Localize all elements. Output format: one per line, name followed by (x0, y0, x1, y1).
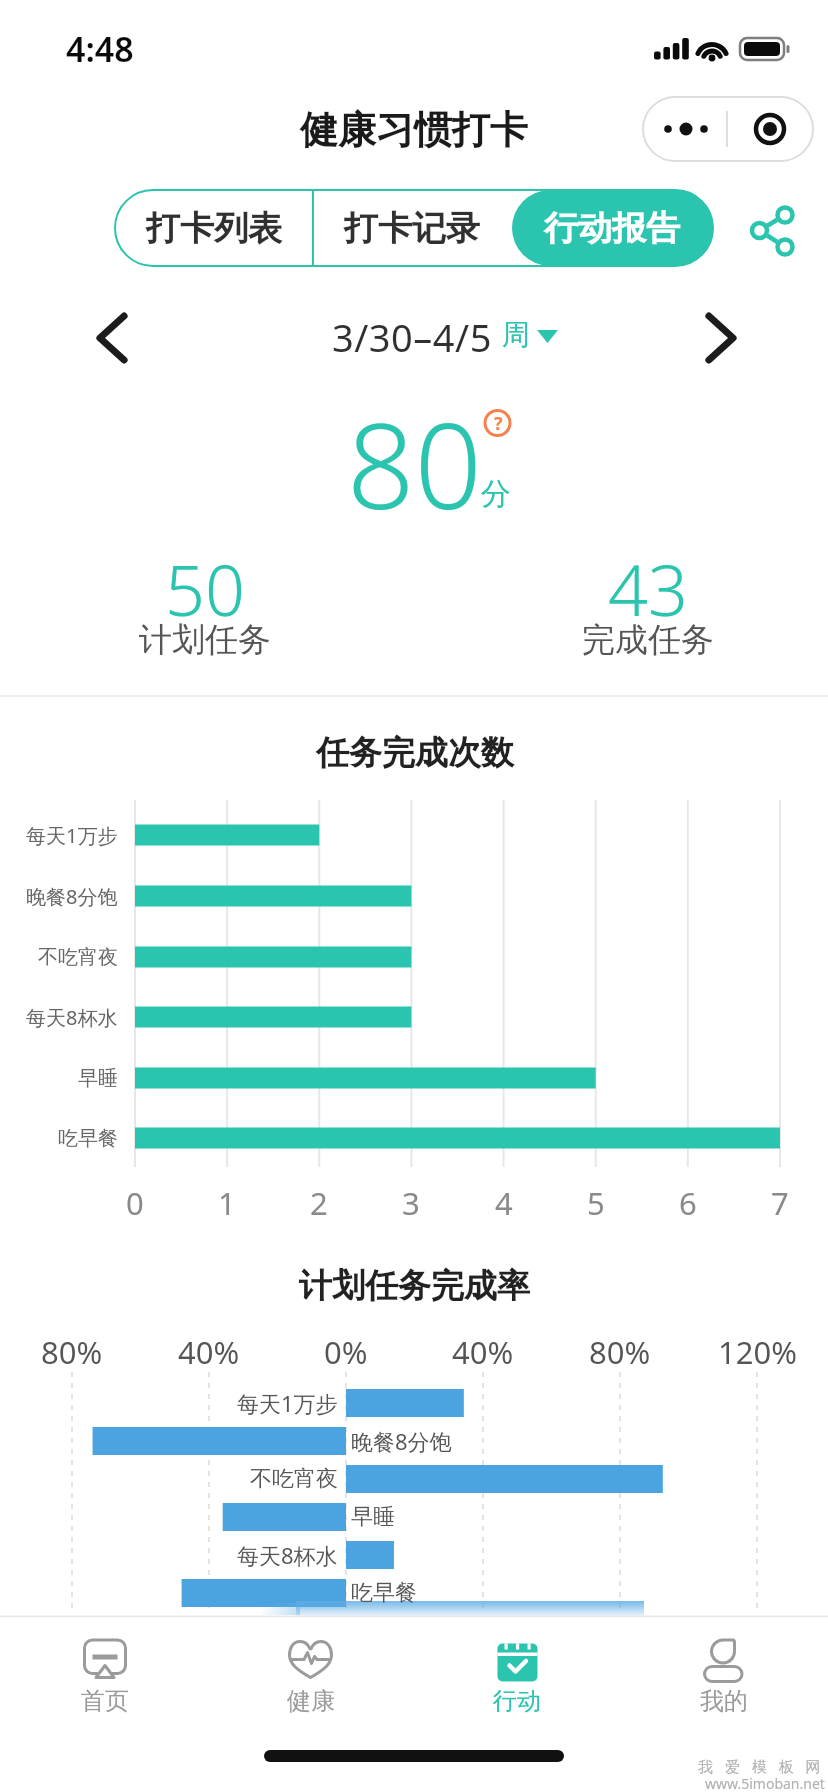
button[interactable] (643, 1626, 803, 1722)
button[interactable] (85, 310, 140, 366)
button[interactable] (512, 190, 713, 266)
staticText: 早睡 (351, 1503, 395, 1531)
staticText: 每天8杯水 (237, 1540, 338, 1570)
staticText: 计划任务完成率 (299, 1265, 530, 1307)
staticText: 0 (126, 1182, 144, 1224)
staticText: 我 爱 模 板 网 (698, 1756, 825, 1776)
staticText: 7 (771, 1182, 789, 1224)
button[interactable] (693, 310, 748, 366)
button[interactable] (437, 1626, 597, 1722)
staticText: 完成任务 (582, 619, 714, 661)
staticText: 晚餐8分饱 (351, 1426, 452, 1456)
staticText: 3 (402, 1182, 420, 1224)
staticText: 吃早餐 (351, 1579, 417, 1607)
staticText: 行动报告 (544, 207, 680, 250)
staticText: 分 (481, 475, 511, 513)
staticText: 5 (587, 1182, 605, 1224)
staticText: 不吃宵夜 (250, 1465, 338, 1493)
staticText: 1 (218, 1182, 236, 1224)
button[interactable] (230, 1626, 390, 1722)
staticText: 6 (679, 1182, 697, 1224)
staticText: 80 (347, 383, 482, 544)
button[interactable] (115, 190, 313, 266)
staticText: www.5imoban.net (705, 1774, 825, 1792)
button[interactable] (313, 190, 512, 266)
button[interactable] (25, 1626, 185, 1722)
button[interactable] (481, 407, 514, 440)
staticText: 50 (165, 541, 245, 636)
staticText: 计划任务 (139, 619, 271, 661)
staticText: 每天8杯水 (26, 1004, 118, 1031)
staticText: 40% (178, 1331, 240, 1373)
staticText: 120% (718, 1331, 797, 1373)
staticText: 每天1万步 (237, 1388, 338, 1418)
staticText: 吃早餐 (58, 1126, 118, 1151)
staticText: 周 (502, 317, 530, 352)
staticText: 3/30–4/5 (332, 311, 492, 363)
staticText: 80% (589, 1331, 651, 1373)
staticText: 晚餐8分饱 (26, 883, 118, 910)
staticText: ? (494, 411, 503, 436)
staticText: 早睡 (78, 1066, 118, 1091)
staticText: 80% (41, 1331, 103, 1373)
staticText: 40% (452, 1331, 514, 1373)
button[interactable] (738, 200, 800, 262)
staticText: 行动 (493, 1686, 541, 1716)
staticText: 打卡列表 (146, 207, 282, 250)
staticText: 健康 (287, 1686, 335, 1716)
staticText: 4 (495, 1182, 513, 1224)
staticText: 每天1万步 (26, 822, 118, 849)
button[interactable] (330, 310, 565, 366)
button[interactable] (728, 97, 813, 161)
staticText: 首页 (81, 1686, 129, 1716)
staticText: 任务完成次数 (316, 732, 514, 774)
staticText: 0% (324, 1331, 368, 1373)
staticText: 43 (608, 541, 688, 636)
staticText: 我的 (700, 1686, 748, 1716)
button[interactable] (643, 97, 728, 161)
staticText: 不吃宵夜 (38, 945, 118, 970)
staticText: 4:48 (66, 26, 134, 72)
staticText: 2 (310, 1182, 328, 1224)
staticText: 打卡记录 (344, 207, 480, 250)
staticText: 健康习惯打卡 (300, 106, 528, 154)
